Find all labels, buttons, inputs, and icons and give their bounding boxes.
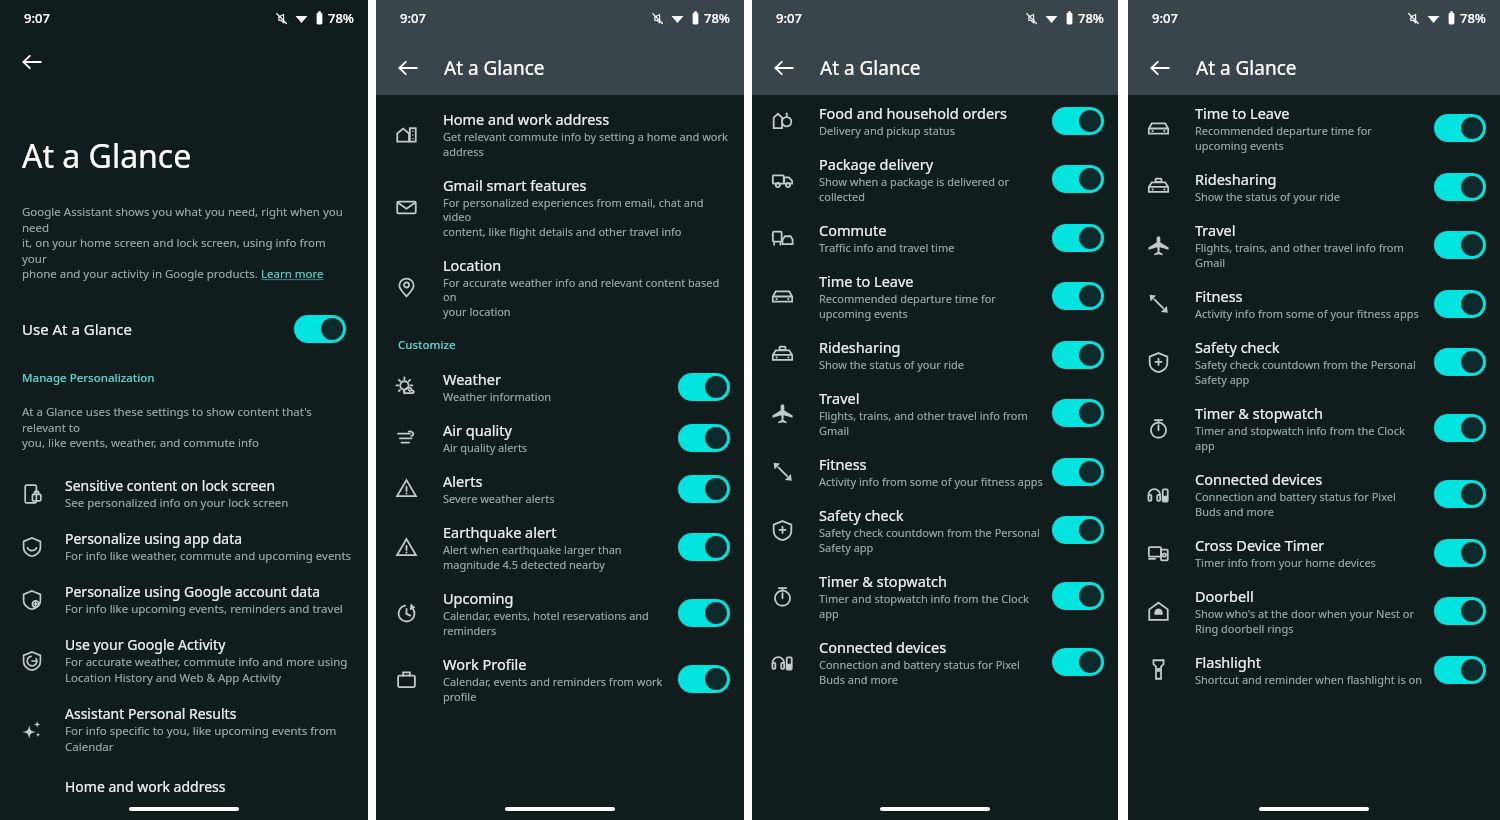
button[interactable]: Ridesharing <box>1128 161 1500 212</box>
button[interactable]: Toggle <box>1052 399 1104 427</box>
staticText: content, like flight details and other t… <box>443 224 682 239</box>
staticText: Commute <box>819 220 887 240</box>
button[interactable]: Toggle <box>1434 656 1486 684</box>
staticText: 78% <box>1078 9 1104 27</box>
staticText: address <box>443 144 484 159</box>
button[interactable]: Location <box>376 247 744 327</box>
button[interactable]: Back <box>762 46 806 90</box>
staticText: Alert when earthquake larger than <box>443 542 622 557</box>
button[interactable]: Fitness <box>752 446 1118 497</box>
button[interactable]: Toggle <box>1052 458 1104 486</box>
button[interactable]: Timer & stopwatch <box>1128 395 1500 461</box>
staticText: See personalized info on your lock scree… <box>65 495 289 511</box>
button[interactable]: Food and household orders <box>752 95 1118 146</box>
staticText: Safety check <box>819 505 904 525</box>
button[interactable]: Earthquake alert <box>376 514 744 580</box>
button[interactable]: Air quality <box>376 412 744 463</box>
staticText: profile <box>443 689 477 704</box>
staticText: app <box>819 606 839 621</box>
button[interactable]: Flashlight <box>1128 644 1500 695</box>
button[interactable]: Travel <box>752 380 1118 446</box>
button[interactable]: Personalize using Google account data <box>0 573 368 626</box>
button[interactable]: Toggle <box>1434 348 1486 376</box>
staticText: Ridesharing <box>819 337 901 357</box>
staticText: Personalize using app data <box>65 529 243 548</box>
button[interactable]: Toggle <box>1052 107 1104 135</box>
button[interactable]: Toggle <box>678 533 730 561</box>
staticText: Travel <box>819 388 860 408</box>
button[interactable]: Work Profile <box>376 646 744 712</box>
button[interactable]: Toggle <box>1434 480 1486 508</box>
button[interactable]: Toggle <box>1052 282 1104 310</box>
staticText: Connected devices <box>1195 469 1323 489</box>
button[interactable]: Toggle <box>1052 582 1104 610</box>
staticText: 9:07 <box>776 9 802 27</box>
button[interactable]: Safety check <box>1128 329 1500 395</box>
staticText: For accurate weather, commute info and m… <box>65 654 348 670</box>
button[interactable]: Time to Leave <box>1128 95 1500 161</box>
button[interactable]: Back <box>10 40 54 84</box>
button[interactable]: Toggle <box>1434 173 1486 201</box>
staticText: Activity info from some of your fitness … <box>819 474 1043 489</box>
button[interactable]: Doorbell <box>1128 578 1500 644</box>
staticText: Traffic info and travel time <box>819 240 955 255</box>
button[interactable]: Toggle <box>1052 224 1104 252</box>
button[interactable]: Toggle <box>678 424 730 452</box>
button[interactable]: Toggle <box>1434 231 1486 259</box>
staticText: Timer info from your home devices <box>1195 555 1376 570</box>
button[interactable]: Toggle <box>678 373 730 401</box>
button[interactable]: Safety check <box>752 497 1118 563</box>
button[interactable]: Toggle <box>294 315 346 343</box>
staticText: 9:07 <box>24 9 50 27</box>
button[interactable]: Cross Device Timer <box>1128 527 1500 578</box>
button[interactable]: Personalize using app data <box>0 520 368 573</box>
button[interactable]: Use At a Glance <box>0 304 368 354</box>
staticText: Activity info from some of your fitness … <box>1195 306 1419 321</box>
button[interactable]: Toggle <box>678 599 730 627</box>
button[interactable]: Toggle <box>1434 114 1486 142</box>
button[interactable]: Manage Personalization <box>22 370 155 386</box>
button[interactable]: Toggle <box>1052 165 1104 193</box>
staticText: Show when a package is delivered or <box>819 174 1009 189</box>
button[interactable]: Assistant Personal Results <box>0 695 368 764</box>
button[interactable]: Package delivery <box>752 146 1118 212</box>
button[interactable]: Commute <box>752 212 1118 263</box>
button[interactable]: Upcoming <box>376 580 744 646</box>
staticText: Air quality alerts <box>443 440 528 455</box>
staticText: Get relevant commute info by setting a h… <box>443 129 728 144</box>
button[interactable]: Toggle <box>1434 414 1486 442</box>
button[interactable]: Sensitive content on lock screen <box>0 467 368 520</box>
button[interactable]: Toggle <box>1052 341 1104 369</box>
staticText: Timer & stopwatch <box>819 571 947 591</box>
button[interactable]: Alerts <box>376 463 744 514</box>
button[interactable]: Weather <box>376 361 744 412</box>
staticText: Time to Leave <box>819 271 914 291</box>
button[interactable]: Gmail smart features <box>376 167 744 247</box>
staticText: Work Profile <box>443 654 527 674</box>
staticText: reminders <box>443 623 497 638</box>
button[interactable]: Home and work address <box>376 101 744 167</box>
button[interactable]: Ridesharing <box>752 329 1118 380</box>
staticText: Alerts <box>443 471 483 491</box>
staticText: 9:07 <box>1152 9 1178 27</box>
button[interactable]: Toggle <box>678 665 730 693</box>
button[interactable]: Back <box>386 46 430 90</box>
button[interactable]: Toggle <box>1434 290 1486 318</box>
staticText: you, like events, weather, and commute i… <box>22 435 260 451</box>
staticText: Calendar, events, hotel reservations and <box>443 608 649 623</box>
button[interactable]: Back <box>1138 46 1182 90</box>
button[interactable]: Toggle <box>1434 539 1486 567</box>
button[interactable]: Learn more <box>261 266 324 282</box>
button[interactable]: Use your Google Activity <box>0 626 368 695</box>
button[interactable]: Toggle <box>678 475 730 503</box>
button[interactable]: Connected devices <box>752 629 1118 695</box>
button[interactable]: Toggle <box>1434 597 1486 625</box>
button[interactable]: Time to Leave <box>752 263 1118 329</box>
button[interactable]: Fitness <box>1128 278 1500 329</box>
staticText: 78% <box>328 9 354 27</box>
button[interactable]: Toggle <box>1052 516 1104 544</box>
button[interactable]: Travel <box>1128 212 1500 278</box>
button[interactable]: Toggle <box>1052 648 1104 676</box>
button[interactable]: Timer & stopwatch <box>752 563 1118 629</box>
button[interactable]: Connected devices <box>1128 461 1500 527</box>
